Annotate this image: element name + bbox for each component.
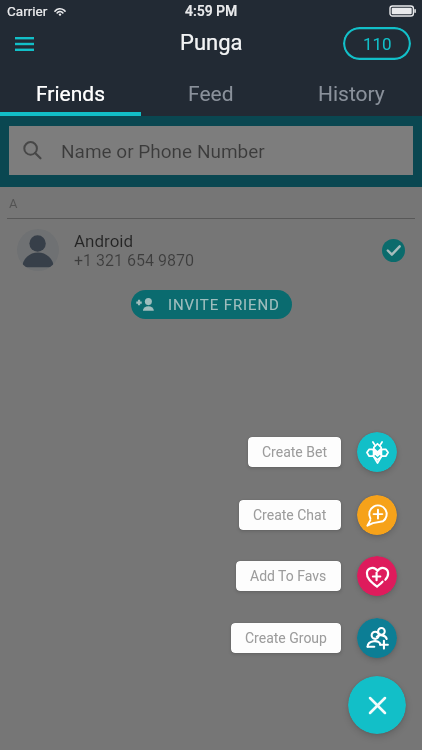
staticText: Create Bet (262, 444, 327, 460)
staticText: Punga (180, 30, 243, 56)
button[interactable]: Add To Favs (357, 556, 397, 596)
staticText: Create Group (245, 630, 327, 646)
staticText: History (318, 82, 385, 107)
button[interactable]: Feed (140, 64, 281, 112)
staticText: A (9, 196, 18, 211)
button[interactable]: Create Chat (239, 500, 341, 530)
staticText: INVITE FRIEND (168, 296, 280, 314)
staticText: 4:59 PM (185, 3, 238, 19)
staticText: Android (74, 231, 134, 251)
staticText: Feed (188, 82, 234, 107)
button[interactable]: INVITE FRIEND (131, 290, 292, 319)
button[interactable]: Close menu (348, 676, 406, 734)
button[interactable]: 110 (343, 27, 411, 60)
button[interactable]: Create Group (357, 618, 397, 658)
staticText: Create Chat (253, 507, 327, 523)
button[interactable]: Selected (382, 239, 405, 262)
staticText: Carrier (7, 3, 48, 19)
button[interactable]: Friends (0, 64, 140, 112)
button[interactable]: History (281, 64, 422, 112)
button[interactable]: Name or Phone Number (9, 126, 413, 175)
button[interactable]: Menu (10, 29, 39, 58)
button[interactable]: Create Group (231, 623, 341, 653)
staticText: 110 (363, 34, 392, 54)
staticText: +1 321 654 9870 (74, 251, 194, 270)
staticText: Add To Favs (250, 568, 327, 584)
staticText: Name or Phone Number (61, 140, 265, 162)
staticText: Friends (36, 82, 105, 107)
button[interactable]: Add To Favs (236, 561, 341, 591)
button[interactable]: Create Chat (357, 495, 397, 535)
button[interactable]: Android (0, 225, 422, 275)
button[interactable]: Create Bet (357, 432, 397, 472)
button[interactable]: Create Bet (248, 437, 341, 467)
